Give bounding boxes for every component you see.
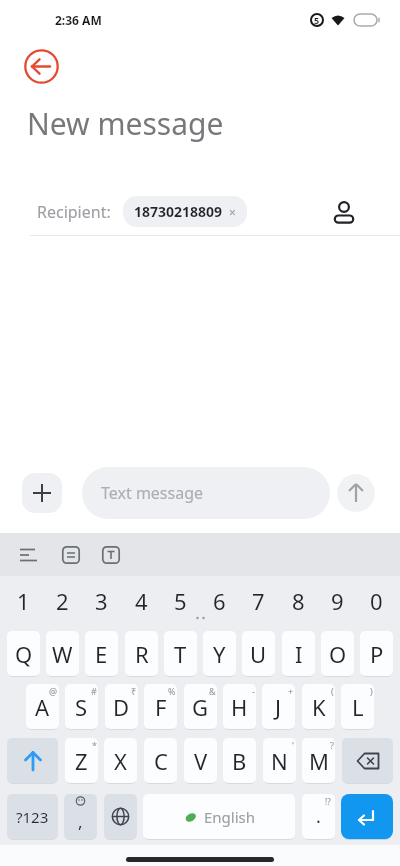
button[interactable]: R xyxy=(125,631,158,676)
staticText: U xyxy=(250,639,267,669)
button[interactable]: 0 xyxy=(360,576,393,626)
staticText: Z xyxy=(75,746,88,776)
staticText: % xyxy=(168,685,176,697)
button[interactable]: 5 xyxy=(164,576,197,626)
button[interactable]: D xyxy=(105,684,138,729)
staticText: F xyxy=(155,692,167,722)
staticText: 18730218809 xyxy=(134,202,223,221)
button[interactable]: 3 xyxy=(85,576,118,626)
button[interactable] xyxy=(22,473,62,513)
button[interactable] xyxy=(102,546,120,564)
button[interactable]: G xyxy=(184,684,217,729)
button[interactable]: V xyxy=(184,738,217,783)
button[interactable]: J xyxy=(262,684,295,729)
button[interactable]: 4 xyxy=(125,576,158,626)
button[interactable]: H xyxy=(223,684,256,729)
staticText: I xyxy=(295,639,303,669)
button[interactable]: I xyxy=(282,631,315,676)
button[interactable]: Y xyxy=(203,631,236,676)
button[interactable] xyxy=(337,474,375,512)
staticText: , xyxy=(78,810,83,833)
staticText: ( xyxy=(331,685,334,697)
button[interactable] xyxy=(332,200,356,224)
button[interactable]: P xyxy=(360,631,393,676)
button[interactable] xyxy=(7,738,58,783)
staticText: M xyxy=(309,746,329,776)
button[interactable]: A xyxy=(26,684,59,729)
button[interactable]: English xyxy=(143,794,295,839)
button[interactable]: 6 xyxy=(203,576,236,626)
staticText: X xyxy=(114,746,127,776)
staticText: 8 xyxy=(292,586,305,616)
button[interactable]: 1 xyxy=(7,576,40,626)
button[interactable]: C xyxy=(144,738,177,783)
staticText: N xyxy=(271,746,288,776)
staticText: 4 xyxy=(135,586,148,616)
staticText: Y xyxy=(213,639,226,669)
button[interactable]: 18730218809 xyxy=(134,202,236,221)
button[interactable] xyxy=(62,546,80,564)
button[interactable]: N xyxy=(263,738,296,783)
button[interactable]: M xyxy=(302,738,335,783)
staticText: G xyxy=(192,692,209,722)
staticText: × xyxy=(229,204,236,220)
button[interactable]: W xyxy=(46,631,79,676)
button[interactable]: 8 xyxy=(282,576,315,626)
button[interactable]: K xyxy=(302,684,335,729)
staticText: H xyxy=(231,692,248,722)
staticText: T xyxy=(174,639,187,669)
staticText: 7 xyxy=(252,586,265,616)
button[interactable]: B xyxy=(223,738,256,783)
button[interactable] xyxy=(342,738,393,783)
staticText: 3 xyxy=(95,586,108,616)
staticText: O xyxy=(329,639,347,669)
staticText: & xyxy=(209,685,216,697)
staticText: L xyxy=(352,692,364,722)
button[interactable]: S xyxy=(65,684,98,729)
staticText: R xyxy=(135,639,149,669)
staticText: A xyxy=(35,692,50,722)
button[interactable]: Q xyxy=(7,631,40,676)
button[interactable] xyxy=(341,794,393,839)
staticText: ? xyxy=(330,739,334,751)
staticText: P xyxy=(370,639,384,669)
button[interactable]: O xyxy=(321,631,354,676)
button[interactable] xyxy=(24,49,59,84)
staticText: Q xyxy=(15,639,33,669)
staticText: 2 xyxy=(56,586,69,616)
button[interactable]: , xyxy=(64,794,97,839)
staticText: 1 xyxy=(17,586,30,616)
staticText: D xyxy=(113,692,130,722)
staticText: S xyxy=(75,692,88,722)
button[interactable] xyxy=(20,546,38,564)
staticText: # xyxy=(91,685,97,697)
staticText: B xyxy=(232,746,247,776)
staticText: K xyxy=(312,692,326,722)
button[interactable]: U xyxy=(242,631,275,676)
staticText: @ xyxy=(49,685,58,697)
button[interactable] xyxy=(104,794,137,839)
button[interactable]: ?123 xyxy=(7,794,58,839)
staticText: . xyxy=(316,804,321,829)
staticText: 6 xyxy=(213,586,226,616)
button[interactable]: 2 xyxy=(46,576,79,626)
button[interactable]: Text message xyxy=(82,467,330,519)
staticText: V xyxy=(194,746,208,776)
staticText: 2:36 AM xyxy=(55,12,102,28)
staticText: 5 xyxy=(174,586,187,616)
button[interactable]: X xyxy=(104,738,137,783)
button[interactable]: . xyxy=(302,794,335,839)
button[interactable]: 7 xyxy=(242,576,275,626)
staticText: ₹ xyxy=(131,685,137,697)
button[interactable]: 9 xyxy=(321,576,354,626)
button[interactable]: Z xyxy=(65,738,98,783)
button[interactable]: E xyxy=(85,631,118,676)
button[interactable]: L xyxy=(341,684,374,729)
staticText: ?123 xyxy=(16,807,49,827)
button[interactable]: F xyxy=(144,684,177,729)
staticText: 0 xyxy=(370,586,383,616)
staticText: English xyxy=(204,807,256,827)
staticText: W xyxy=(52,639,73,669)
button[interactable]: T xyxy=(164,631,197,676)
staticText: 9 xyxy=(331,586,344,616)
